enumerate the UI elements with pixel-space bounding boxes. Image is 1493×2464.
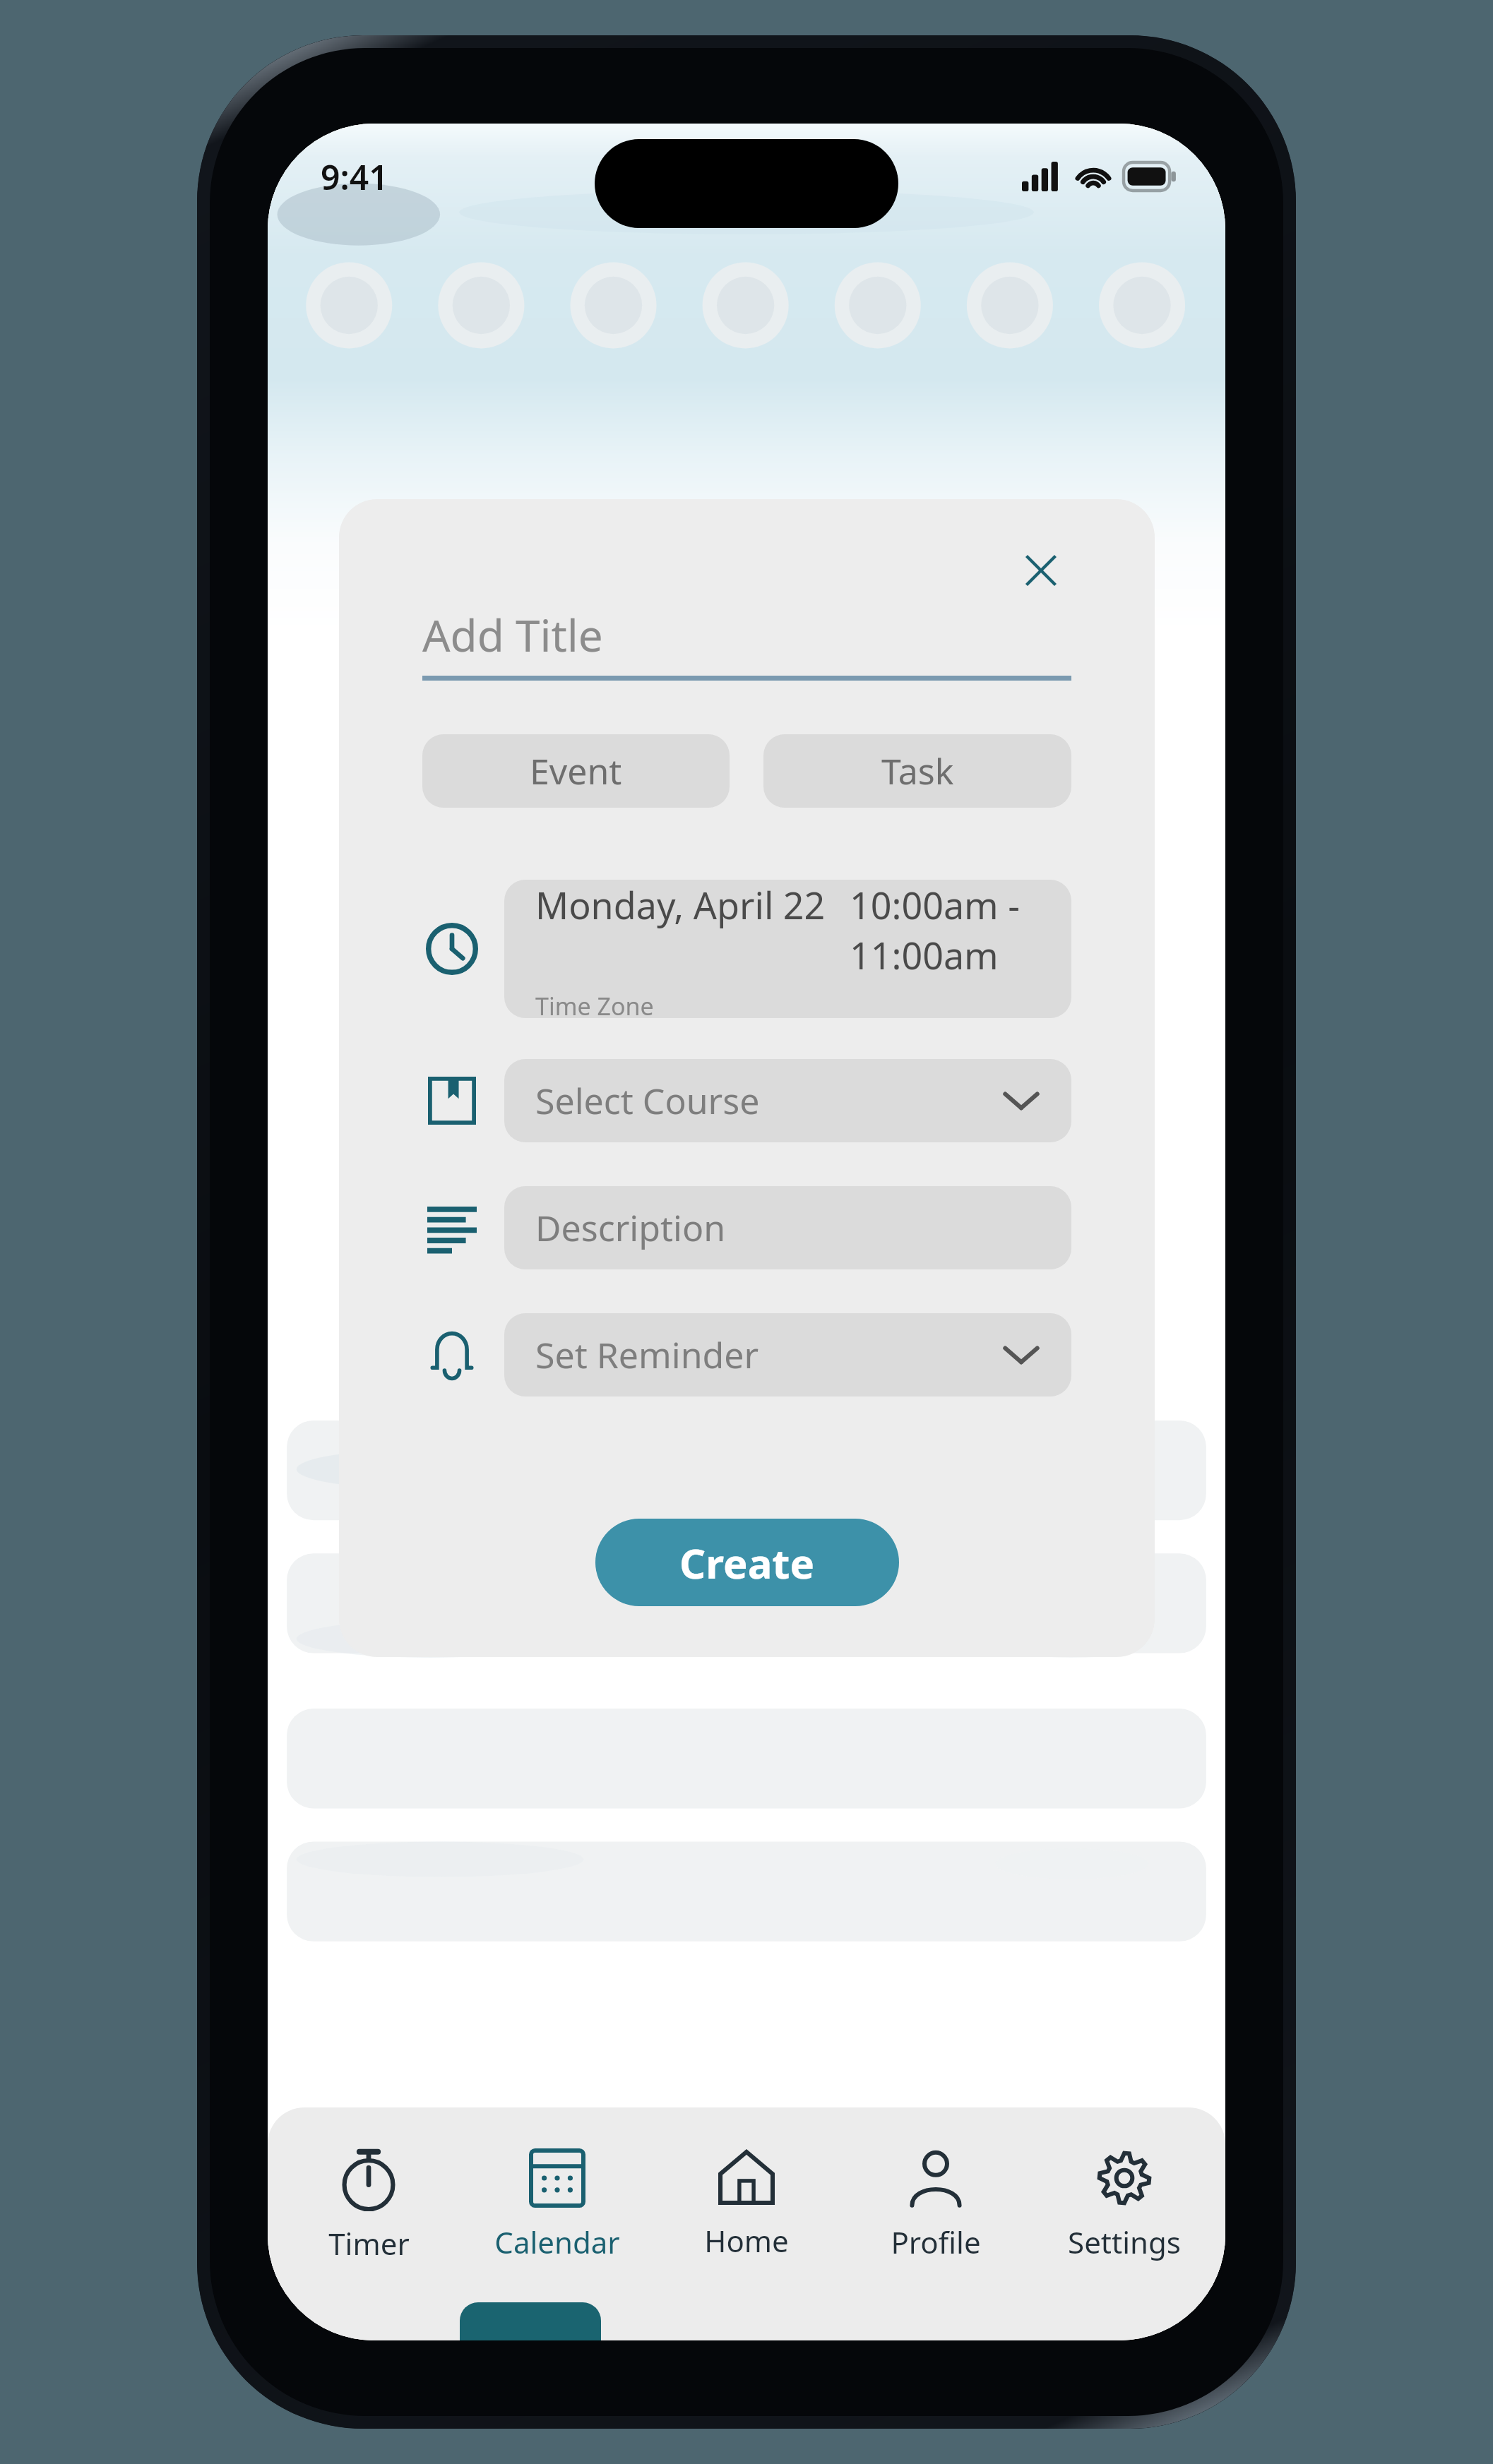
staticText: Create — [679, 1535, 815, 1591]
button[interactable]: Event — [422, 734, 730, 808]
staticText: Select Course — [535, 1077, 1002, 1125]
button[interactable]: Set Reminder — [504, 1313, 1071, 1397]
staticText: Set Reminder — [535, 1331, 1002, 1379]
staticText: Time Zone — [535, 990, 654, 1018]
button[interactable]: Home — [658, 2144, 835, 2265]
staticText: 10:00am - 11:00am — [850, 880, 1071, 980]
button[interactable]: Settings — [1036, 2144, 1213, 2266]
button[interactable] — [422, 1325, 482, 1384]
staticText: Home — [704, 2220, 789, 2261]
button[interactable]: Profile — [847, 2144, 1024, 2266]
button[interactable]: Task — [763, 734, 1071, 808]
staticText: Timer — [328, 2223, 410, 2263]
staticText: 9:41 — [321, 154, 388, 200]
staticText: Description — [535, 1204, 726, 1252]
staticText: Calendar — [494, 2222, 620, 2262]
staticText: Add Title — [422, 605, 603, 664]
staticText: Profile — [891, 2222, 981, 2262]
button[interactable]: Create — [595, 1519, 899, 1606]
button[interactable]: Add Title — [422, 605, 1071, 681]
button[interactable]: Monday, April 22 — [504, 880, 1071, 1018]
button[interactable]: Calendar — [469, 2144, 646, 2266]
staticText: Event — [530, 747, 622, 795]
button[interactable]: Select Course — [504, 1059, 1071, 1142]
staticText: Task — [881, 747, 954, 795]
button[interactable]: Close — [1011, 540, 1071, 601]
button[interactable]: Timer — [280, 2144, 457, 2268]
button[interactable]: Description — [504, 1186, 1071, 1269]
staticText: Settings — [1068, 2222, 1181, 2262]
button[interactable] — [422, 1198, 482, 1257]
button[interactable] — [422, 1071, 482, 1130]
button[interactable] — [422, 919, 482, 979]
staticText: Monday, April 22 — [535, 880, 826, 930]
